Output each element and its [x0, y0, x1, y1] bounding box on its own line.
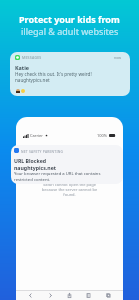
staticText: naughtypics.net	[14, 164, 57, 171]
staticText: NET SAFETY PARENTING	[21, 149, 64, 153]
staticText: Katie	[15, 64, 29, 71]
button[interactable]: Share	[65, 291, 74, 300]
button[interactable]: MESSAGES	[10, 52, 130, 96]
button[interactable]: Back	[26, 291, 35, 300]
staticText: now	[114, 55, 121, 60]
staticText: URL Blocked	[14, 157, 47, 164]
staticText: illegal & adult websites	[21, 25, 119, 37]
staticText: 100%	[97, 133, 108, 138]
staticText: Safari cannot open the page because the …	[36, 182, 103, 197]
staticText: MESSAGES	[22, 55, 42, 60]
staticText: Carrier	[30, 133, 44, 138]
staticText: naughtypics.net	[15, 77, 50, 83]
button[interactable]: Bookmarks	[84, 291, 93, 300]
staticText: Your browser requested a URL that contai…	[14, 171, 101, 183]
staticText: Protect your kids from	[19, 13, 120, 25]
button[interactable]: Tabs	[104, 291, 113, 300]
staticText: Hey check this out. It's pretty weird!	[15, 71, 92, 77]
button[interactable]: Forward	[46, 291, 55, 300]
button[interactable]: NET SAFETY PARENTING	[11, 145, 123, 184]
